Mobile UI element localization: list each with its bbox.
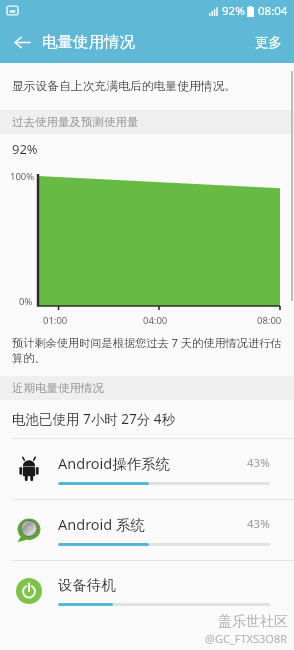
staticText: @GC_FTXS3O8R — [205, 631, 288, 646]
staticText: 0% — [19, 295, 33, 308]
staticText: 08:04 — [258, 3, 288, 19]
staticText: 92% — [222, 3, 245, 19]
staticText: 过去使用量及预测使用量 — [12, 115, 139, 129]
staticText: 08:00 — [257, 314, 282, 327]
staticText: 电量使用情况 — [42, 32, 135, 52]
button[interactable]: Back — [0, 21, 42, 63]
button[interactable]: 更多 — [243, 24, 294, 61]
staticText: 设备待机 — [58, 576, 116, 594]
staticText: 盖乐世社区 — [218, 613, 288, 631]
staticText: 显示设备自上次充满电后的电量使用情况。 — [12, 79, 237, 94]
staticText: 100% — [10, 170, 35, 183]
staticText: 43% — [247, 455, 270, 471]
button[interactable]: Android 系统 — [0, 500, 294, 560]
staticText: Android 系统 — [58, 514, 146, 534]
staticText: 近期电量使用情况 — [12, 381, 104, 395]
staticText: 04:00 — [143, 314, 168, 327]
button[interactable]: 设备待机 — [0, 561, 294, 621]
staticText: 电池已使用 7小时 27分 4秒 — [12, 410, 175, 428]
staticText: Android操作系统 — [58, 453, 171, 473]
staticText: 92% — [12, 140, 38, 158]
staticText: 预计剩余使用时间是根据您过去 7 天的使用情况进行估算的。 — [12, 335, 282, 366]
staticText: 更多 — [255, 34, 282, 51]
button[interactable]: Android操作系统 — [0, 439, 294, 499]
staticText: 43% — [247, 516, 270, 532]
staticText: 01:00 — [43, 314, 68, 327]
